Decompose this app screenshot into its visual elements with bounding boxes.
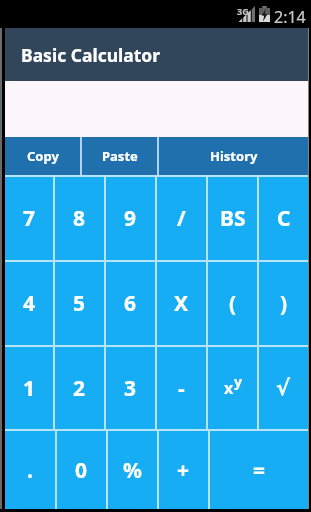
- staticText: -: [178, 374, 185, 403]
- staticText: ): [280, 289, 288, 318]
- button[interactable]: 7: [5, 177, 53, 260]
- staticText: x: [224, 377, 234, 399]
- staticText: .: [27, 456, 33, 485]
- button[interactable]: -: [157, 347, 206, 429]
- button[interactable]: 2: [55, 347, 104, 429]
- staticText: Basic Calculator: [21, 43, 161, 67]
- button[interactable]: 6: [106, 262, 155, 345]
- staticText: 8: [73, 204, 86, 233]
- staticText: +: [177, 456, 190, 485]
- button[interactable]: 5: [55, 262, 104, 345]
- staticText: 2:14: [274, 6, 306, 28]
- staticText: 9: [124, 204, 137, 233]
- staticText: 4: [23, 289, 36, 318]
- button[interactable]: √: [259, 347, 308, 429]
- staticText: (: [229, 289, 237, 318]
- staticText: BS: [220, 204, 246, 233]
- button[interactable]: /: [157, 177, 206, 260]
- button[interactable]: Copy: [5, 137, 80, 175]
- button[interactable]: +: [159, 431, 208, 509]
- staticText: /: [177, 204, 186, 233]
- button[interactable]: (: [208, 262, 257, 345]
- staticText: X: [174, 289, 189, 318]
- staticText: √: [276, 376, 291, 400]
- staticText: 7: [23, 204, 36, 233]
- button[interactable]: ): [259, 262, 308, 345]
- button[interactable]: 1: [5, 347, 53, 429]
- button[interactable]: 0: [57, 431, 106, 509]
- button[interactable]: C: [259, 177, 308, 260]
- button[interactable]: History: [159, 137, 308, 175]
- button[interactable]: 9: [106, 177, 155, 260]
- staticText: History: [210, 147, 258, 165]
- button[interactable]: .: [5, 431, 55, 509]
- staticText: 0: [75, 456, 88, 485]
- staticText: 6: [124, 289, 137, 318]
- staticText: C: [277, 204, 291, 233]
- staticText: y: [234, 372, 242, 391]
- button[interactable]: 3: [106, 347, 155, 429]
- button[interactable]: BS: [208, 177, 257, 260]
- button[interactable]: 8: [55, 177, 104, 260]
- staticText: %: [123, 456, 142, 485]
- button[interactable]: Paste: [82, 137, 157, 175]
- staticText: 5: [73, 289, 86, 318]
- staticText: 3G: [237, 5, 249, 17]
- staticText: 3: [124, 374, 137, 403]
- staticText: 2: [73, 374, 86, 403]
- staticText: Copy: [27, 147, 59, 165]
- button[interactable]: X: [157, 262, 206, 345]
- button[interactable]: %: [108, 431, 157, 509]
- button[interactable]: =: [210, 431, 308, 509]
- button[interactable]: 4: [5, 262, 53, 345]
- button[interactable]: x: [208, 347, 257, 429]
- staticText: 1: [23, 374, 36, 403]
- staticText: =: [253, 456, 266, 485]
- staticText: Paste: [102, 147, 138, 165]
